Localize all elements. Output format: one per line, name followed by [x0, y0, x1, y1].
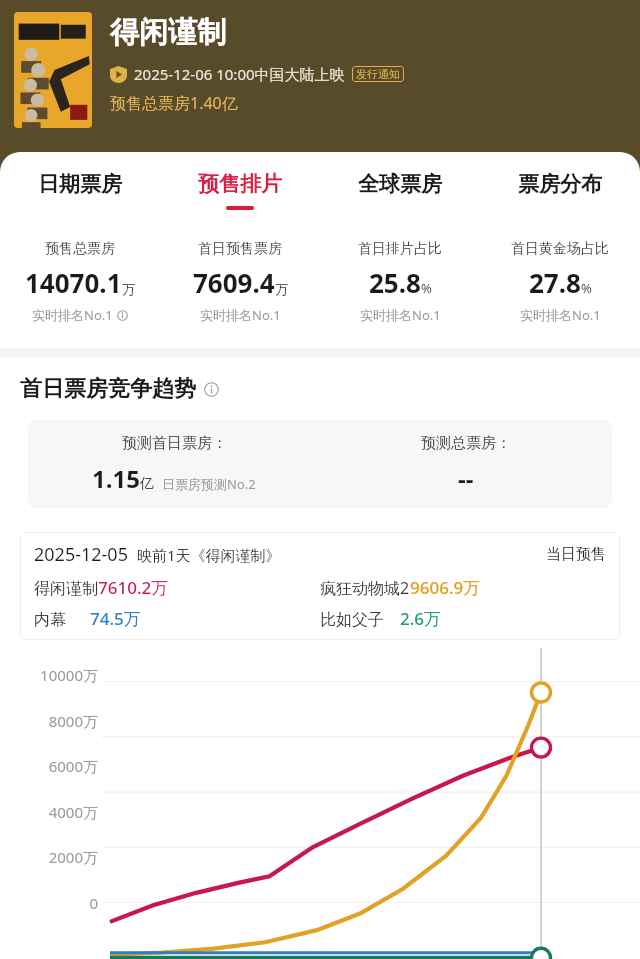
button[interactable]: 首日黄金场占比: [480, 240, 640, 324]
button[interactable]: 电影海报: [14, 12, 92, 128]
staticText: 预售总票房1.40亿: [110, 92, 238, 114]
staticText: 预测首日票房：: [122, 434, 227, 453]
button[interactable]: 首日排片占比: [320, 240, 480, 324]
staticText: 4000万: [10, 802, 98, 822]
staticText: 2000万: [10, 847, 98, 867]
staticText: 日票房预测No.2: [162, 475, 256, 493]
staticText: 25.8: [369, 265, 421, 300]
staticText: 实时排名No.1: [360, 306, 441, 324]
button[interactable]: 预售总票房: [0, 240, 160, 324]
button[interactable]: 首日预售票房: [160, 240, 320, 324]
staticText: 发行通知: [356, 67, 400, 81]
staticText: 万: [122, 281, 135, 297]
staticText: 7610.2万: [98, 576, 169, 599]
staticText: 得闲谨制: [34, 579, 98, 599]
staticText: 万: [275, 281, 288, 297]
staticText: 日期票房: [38, 171, 122, 197]
staticText: 亿: [140, 475, 154, 493]
staticText: 14070.1: [25, 265, 122, 300]
button[interactable]: 日期票房: [0, 152, 160, 228]
button[interactable]: 预售排片: [160, 152, 320, 228]
staticText: 8000万: [10, 711, 98, 731]
staticText: 预售总票房: [45, 240, 115, 258]
staticText: --: [458, 462, 474, 495]
staticText: 全球票房: [358, 171, 442, 197]
staticText: 票房分布: [518, 171, 602, 197]
staticText: 6000万: [10, 756, 98, 776]
staticText: 得闲谨制: [110, 14, 226, 51]
staticText: 首日预售票房: [198, 240, 282, 258]
staticText: 9606.9万: [410, 576, 481, 599]
staticText: 0: [10, 893, 98, 913]
staticText: 疯狂动物城2: [320, 577, 410, 599]
staticText: 首日黄金场占比: [511, 240, 609, 258]
staticText: 比如父子: [320, 610, 384, 630]
staticText: 实时排名No.1: [32, 306, 113, 324]
staticText: 映前1天《得闲谨制》: [137, 545, 281, 565]
button[interactable]: 2025-12-05: [20, 532, 620, 640]
staticText: %: [581, 279, 592, 297]
button[interactable]: 说明: [204, 382, 219, 397]
staticText: 内幕: [34, 610, 66, 630]
button[interactable]: 票房分布: [480, 152, 640, 228]
staticText: 27.8: [529, 265, 581, 300]
staticText: 预售排片: [198, 171, 282, 197]
staticText: 实时排名No.1: [520, 306, 601, 324]
staticText: 74.5万: [90, 607, 141, 630]
staticText: 2025-12-06 10:00中国大陆上映: [134, 64, 345, 84]
button[interactable]: 预测首日票房：: [28, 420, 612, 508]
staticText: 首日排片占比: [358, 240, 442, 258]
staticText: 1.15: [92, 462, 140, 495]
staticText: 当日预售: [546, 545, 606, 564]
staticText: 首日票房竞争趋势: [20, 375, 196, 403]
staticText: %: [421, 279, 432, 297]
staticText: 7609.4: [193, 265, 275, 300]
button[interactable]: 全球票房: [320, 152, 480, 228]
button[interactable]: 发行通知: [352, 66, 404, 82]
staticText: 10000万: [10, 665, 98, 685]
staticText: 2.6万: [400, 607, 442, 630]
staticText: 2025-12-05: [34, 542, 128, 567]
staticText: 实时排名No.1: [200, 306, 281, 324]
staticText: 预测总票房：: [421, 434, 511, 453]
